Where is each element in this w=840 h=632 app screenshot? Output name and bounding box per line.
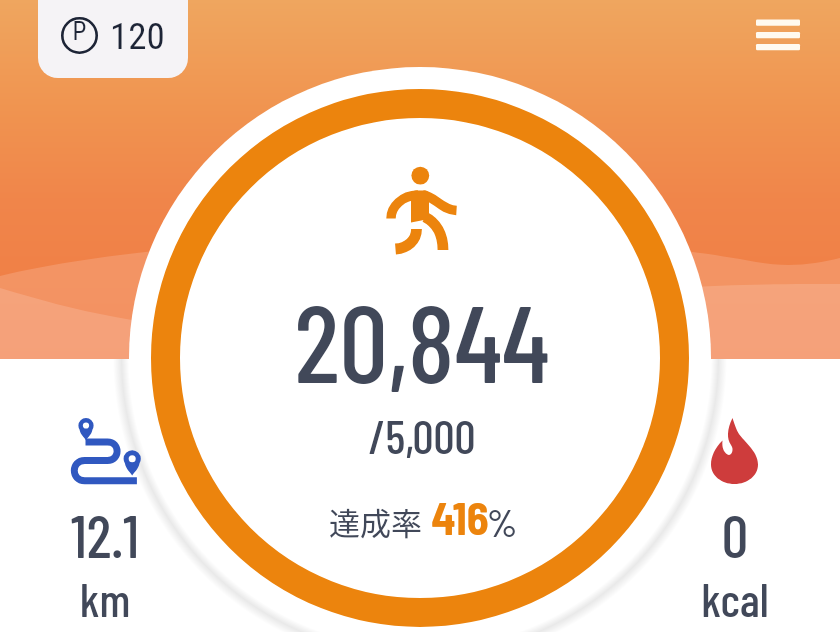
staticText: km [50,570,160,626]
staticText: /5,000 [262,407,582,467]
button[interactable]: Menu [746,8,810,62]
staticText: P [61,17,98,54]
staticText: 120 [110,15,165,58]
staticText: 0 [680,499,790,569]
staticText: 20,844 [222,275,622,425]
staticText: kcal [680,570,790,626]
staticText: % [487,498,547,544]
staticText: 12.1 [50,499,160,569]
button[interactable]: 12.1 [50,400,160,620]
staticText: 達成率 [292,499,422,545]
staticText: 416 [420,490,500,542]
button[interactable] [38,0,188,78]
button[interactable]: 0 [680,400,790,620]
